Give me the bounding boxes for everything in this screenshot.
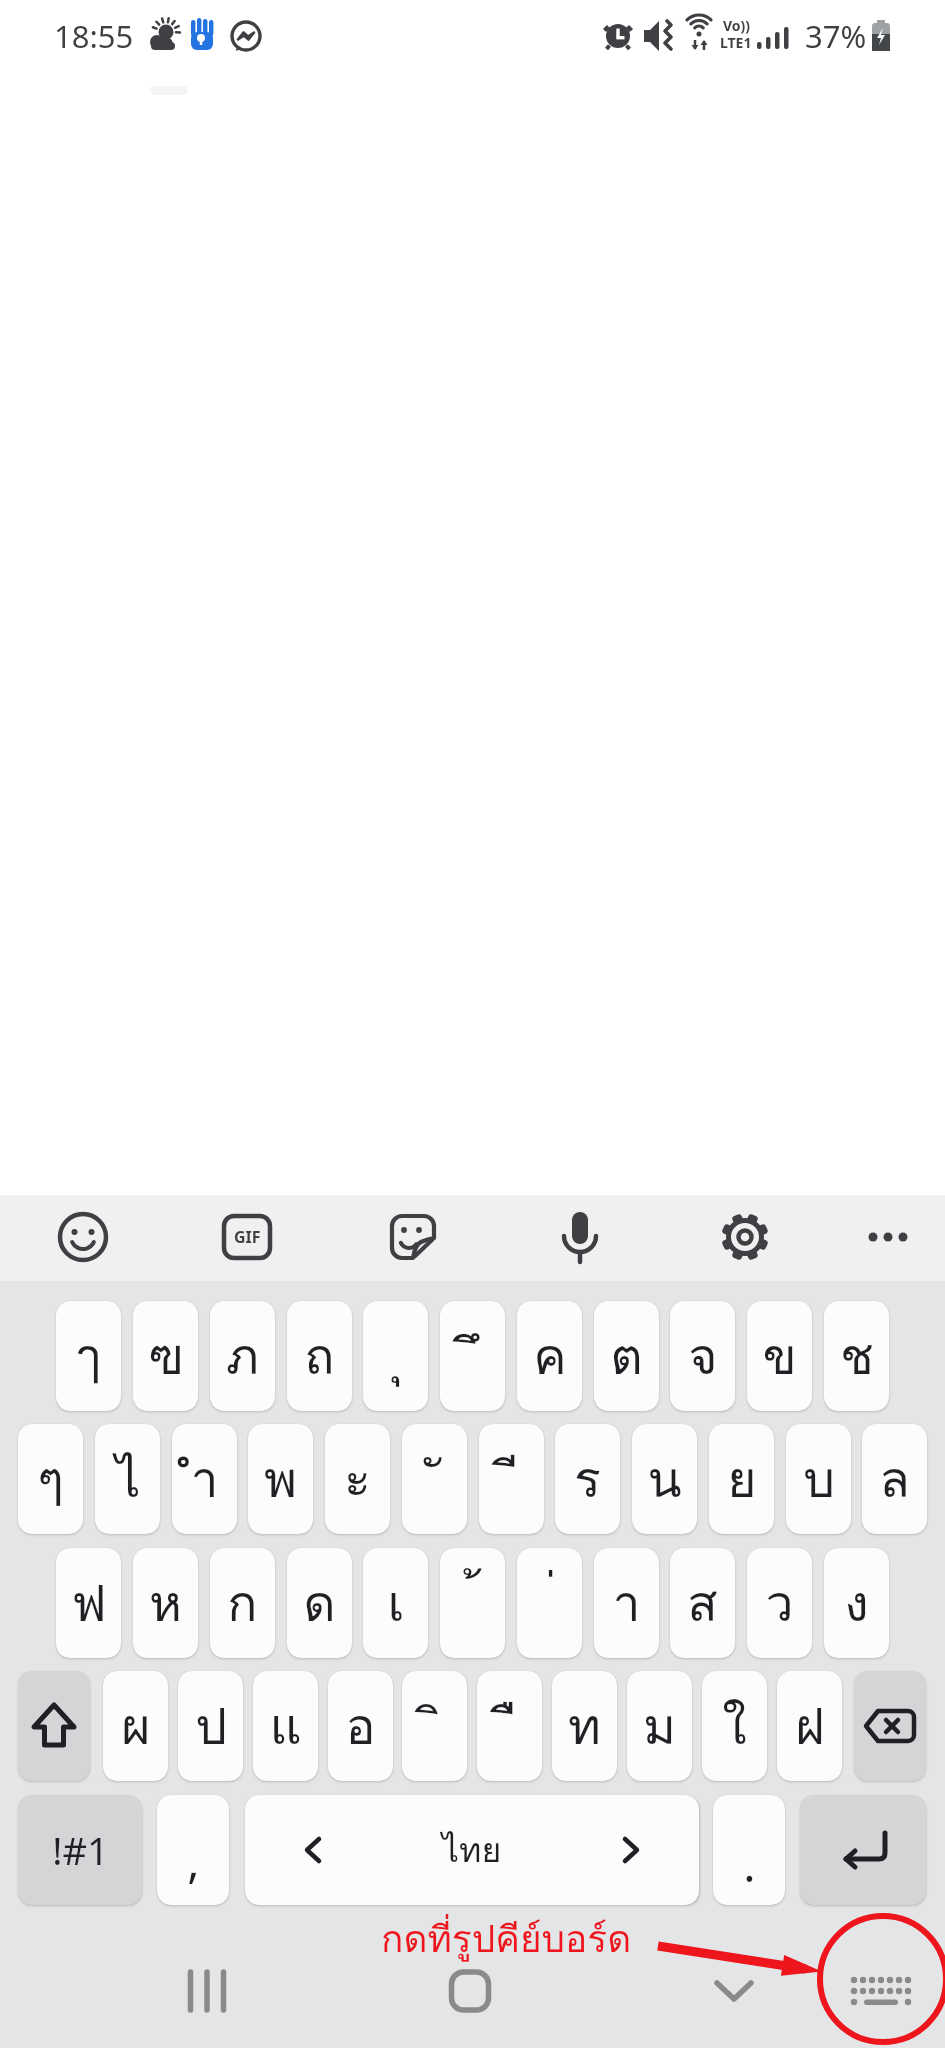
button[interactable]: !#1: [18, 1795, 142, 1905]
button[interactable]: ถ: [287, 1301, 352, 1411]
button[interactable]: า: [594, 1548, 659, 1658]
button[interactable]: [715, 1207, 775, 1267]
staticText: .: [743, 1833, 756, 1896]
staticText: ร: [574, 1440, 601, 1519]
staticText: ฟ: [71, 1564, 107, 1643]
staticText: ไ: [115, 1440, 141, 1519]
button[interactable]: [172, 1956, 242, 2026]
button[interactable]: ,: [157, 1795, 229, 1905]
staticText: อ: [345, 1687, 376, 1766]
button[interactable]: ง: [824, 1548, 889, 1658]
button[interactable]: ิ: [402, 1671, 467, 1781]
button[interactable]: น: [632, 1424, 697, 1534]
staticText: GIF: [234, 1226, 261, 1248]
button[interactable]: ุ: [363, 1301, 428, 1411]
staticText: ว: [765, 1564, 794, 1643]
staticText: ท: [568, 1687, 601, 1766]
button[interactable]: ช: [824, 1301, 889, 1411]
staticText: ื: [503, 1687, 517, 1766]
staticText: ภ: [226, 1317, 259, 1396]
staticText: เ: [387, 1564, 405, 1643]
button[interactable]: .: [713, 1795, 785, 1905]
button[interactable]: [550, 1207, 610, 1267]
button[interactable]: ท: [552, 1671, 617, 1781]
button[interactable]: ั: [402, 1424, 467, 1534]
staticText: พ: [264, 1440, 297, 1519]
staticText: ห: [149, 1564, 182, 1643]
button[interactable]: ผ: [103, 1671, 168, 1781]
staticText: น: [647, 1440, 682, 1519]
staticText: ไทย: [442, 1823, 502, 1877]
button[interactable]: พ: [248, 1424, 313, 1534]
staticText: ี: [505, 1440, 519, 1519]
button[interactable]: ว: [747, 1548, 812, 1658]
button[interactable]: ้: [440, 1548, 505, 1658]
button[interactable]: [383, 1207, 443, 1267]
staticText: ถ: [304, 1317, 335, 1396]
button[interactable]: [18, 1671, 90, 1781]
staticText: ผ: [121, 1687, 151, 1766]
staticText: จ: [688, 1317, 718, 1396]
staticText: 37%: [805, 15, 867, 57]
button[interactable]: [800, 1795, 926, 1905]
button[interactable]: ำ: [172, 1424, 237, 1534]
staticText: ิ: [428, 1687, 442, 1766]
staticText: ใ: [722, 1687, 747, 1766]
button[interactable]: GIF: [217, 1207, 277, 1267]
staticText: บ: [803, 1440, 835, 1519]
button[interactable]: ป: [178, 1671, 243, 1781]
button[interactable]: ะ: [325, 1424, 390, 1534]
button[interactable]: จ: [670, 1301, 735, 1411]
button[interactable]: ๆ: [18, 1424, 83, 1534]
staticText: ,: [187, 1829, 200, 1892]
button[interactable]: ก: [210, 1548, 275, 1658]
button[interactable]: [846, 1956, 916, 2026]
button[interactable]: ฝ: [777, 1671, 842, 1781]
button[interactable]: ส: [670, 1548, 735, 1658]
button[interactable]: ึ: [440, 1301, 505, 1411]
button[interactable]: ข: [747, 1301, 812, 1411]
staticText: ก: [227, 1564, 258, 1643]
staticText: !#1: [52, 1824, 109, 1876]
button[interactable]: ต: [594, 1301, 659, 1411]
button[interactable]: ฃ: [133, 1301, 198, 1411]
button[interactable]: [699, 1956, 769, 2026]
staticText: ะ: [344, 1440, 371, 1519]
button[interactable]: ล: [862, 1424, 927, 1534]
staticText: ล: [879, 1440, 910, 1519]
button[interactable]: อ: [328, 1671, 393, 1781]
staticText: ม: [643, 1687, 676, 1766]
button[interactable]: ไ: [95, 1424, 160, 1534]
button[interactable]: ื: [477, 1671, 542, 1781]
button[interactable]: ไทย: [245, 1795, 699, 1905]
button[interactable]: ด: [287, 1548, 352, 1658]
staticText: ต: [610, 1317, 643, 1396]
button[interactable]: ใ: [702, 1671, 767, 1781]
button[interactable]: บ: [786, 1424, 851, 1534]
button[interactable]: เ: [363, 1548, 428, 1658]
staticText: า: [612, 1564, 641, 1643]
button[interactable]: ห: [133, 1548, 198, 1658]
button[interactable]: ม: [627, 1671, 692, 1781]
button[interactable]: ค: [517, 1301, 582, 1411]
button[interactable]: ฟ: [56, 1548, 121, 1658]
button[interactable]: แ: [253, 1671, 318, 1781]
staticText: ฃ: [148, 1317, 184, 1396]
staticText: ่: [543, 1564, 557, 1643]
button[interactable]: ่: [517, 1548, 582, 1658]
staticText: ้: [466, 1564, 480, 1643]
button[interactable]: ภ: [210, 1301, 275, 1411]
staticText: ค: [533, 1317, 567, 1396]
button[interactable]: [435, 1956, 505, 2026]
staticText: ส: [687, 1564, 718, 1643]
button[interactable]: [53, 1207, 113, 1267]
button[interactable]: [854, 1671, 926, 1781]
button[interactable]: ย: [709, 1424, 774, 1534]
staticText: ๆ: [37, 1440, 64, 1519]
button[interactable]: [858, 1207, 918, 1267]
staticText: LTE1: [720, 33, 752, 52]
button[interactable]: ๅ: [56, 1301, 121, 1411]
button[interactable]: ร: [555, 1424, 620, 1534]
staticText: ุ: [389, 1317, 403, 1396]
button[interactable]: ี: [479, 1424, 544, 1534]
